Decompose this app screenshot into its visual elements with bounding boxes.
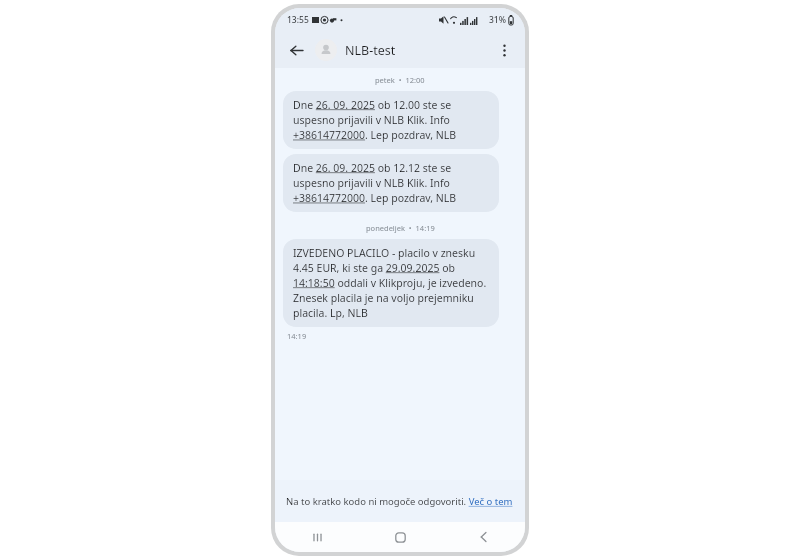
staticText: ponedeljek • 14:19 bbox=[366, 223, 435, 233]
button[interactable]: Back bbox=[442, 522, 525, 552]
button[interactable]: Back bbox=[283, 37, 309, 63]
staticText: 14:19 bbox=[287, 331, 307, 341]
button[interactable]: IZVEDENO PLACILO - placilo v znesku 4.45… bbox=[283, 239, 499, 327]
button[interactable]: Na to kratko kodo ni mogoče odgovoriti. … bbox=[286, 495, 513, 508]
button[interactable]: More options bbox=[491, 37, 517, 63]
staticText: 13:55 bbox=[287, 14, 309, 26]
staticText: petek • 12:00 bbox=[375, 75, 425, 85]
staticText: Dne 26. 09. 2025 ob 12.12 ste se uspesno… bbox=[293, 161, 489, 205]
staticText: NLB-test bbox=[345, 42, 396, 59]
staticText: 31% bbox=[489, 14, 506, 26]
button[interactable]: Home bbox=[359, 522, 442, 552]
staticText: Dne 26. 09. 2025 ob 12.00 ste se uspesno… bbox=[293, 98, 489, 142]
button[interactable]: Dne 26. 09. 2025 ob 12.00 ste se uspesno… bbox=[283, 91, 499, 149]
button[interactable]: Dne 26. 09. 2025 ob 12.12 ste se uspesno… bbox=[283, 154, 499, 212]
button[interactable]: Recent apps bbox=[275, 522, 359, 552]
button[interactable]: NLB-test bbox=[345, 42, 491, 59]
staticText: IZVEDENO PLACILO - placilo v znesku 4.45… bbox=[293, 246, 489, 320]
button[interactable]: Contact avatar bbox=[315, 39, 337, 61]
